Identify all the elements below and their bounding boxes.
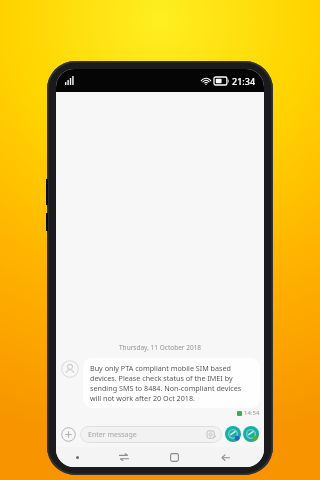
- staticText: Thursday, 11 October 2018: [119, 343, 202, 352]
- button[interactable]: Home: [149, 447, 200, 467]
- button[interactable]: Recent apps: [98, 447, 149, 467]
- staticText: Enter message: [88, 430, 137, 440]
- button[interactable]: Send via SIM 2: [243, 426, 259, 442]
- staticText: Buy only PTA compliant mobile SIM based …: [90, 363, 253, 403]
- button[interactable]: Send via SIM 1: [225, 426, 241, 442]
- button[interactable]: Enter message: [80, 426, 222, 443]
- button[interactable]: Add attachment: [61, 427, 76, 442]
- button[interactable]: Contact avatar: [61, 360, 79, 378]
- staticText: 21:34: [232, 75, 256, 87]
- staticText: 14:54: [244, 409, 260, 417]
- button[interactable]: Buy only PTA compliant mobile SIM based …: [83, 358, 260, 408]
- button[interactable]: Back: [200, 447, 251, 467]
